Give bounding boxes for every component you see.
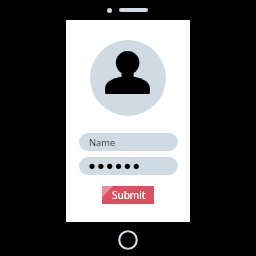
button[interactable]: Submit xyxy=(102,186,154,204)
staticText: Submit xyxy=(112,188,146,202)
button[interactable]: Name xyxy=(79,133,178,151)
button[interactable]: Home xyxy=(117,229,139,251)
button[interactable] xyxy=(79,157,178,175)
staticText: Name xyxy=(89,136,116,149)
